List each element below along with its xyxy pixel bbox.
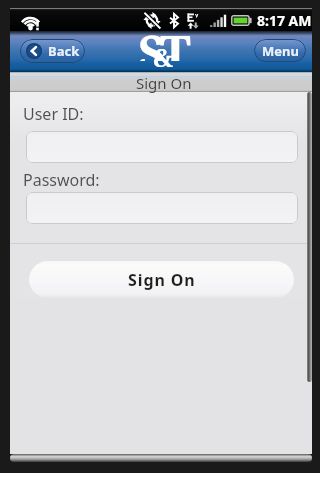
button[interactable]: Sign On	[29, 261, 294, 298]
button[interactable]	[26, 192, 298, 224]
button[interactable]	[26, 131, 298, 163]
staticText: Menu	[262, 42, 299, 60]
staticText: 8:17 AM	[257, 11, 312, 30]
staticText: Sign On	[136, 73, 192, 93]
button[interactable]: Menu	[254, 39, 306, 62]
staticText: S	[138, 20, 166, 61]
staticText: T	[160, 20, 191, 61]
staticText: &	[153, 40, 174, 74]
button[interactable]: Back	[20, 39, 85, 63]
staticText: Sign On	[128, 269, 196, 291]
staticText: Back	[48, 42, 80, 60]
staticText: Password:	[23, 169, 100, 191]
staticText: User ID:	[23, 103, 84, 125]
